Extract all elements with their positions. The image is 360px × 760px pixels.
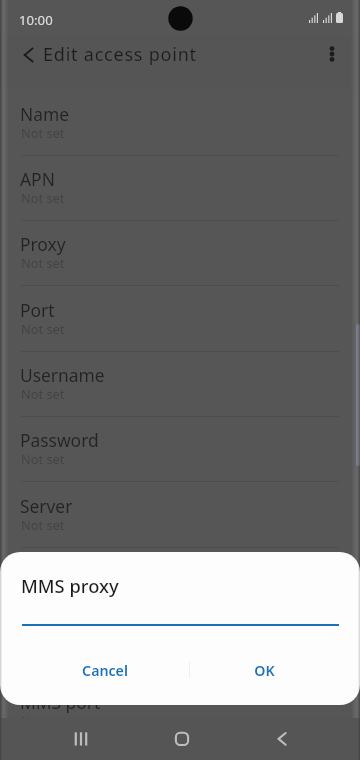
button[interactable]: Home: [160, 717, 204, 759]
staticText: Not set: [21, 516, 65, 533]
staticText: Not set: [21, 581, 65, 598]
staticText: Not set: [21, 254, 65, 271]
staticText: Not set: [21, 320, 65, 337]
button[interactable]: Proxy: [0, 221, 360, 286]
button[interactable]: Password: [0, 417, 360, 482]
button[interactable]: Recent apps: [59, 717, 103, 759]
staticText: Not set: [21, 385, 65, 402]
staticText: Cancel: [82, 661, 128, 680]
button[interactable]: Username: [0, 352, 360, 417]
staticText: Username: [20, 363, 105, 387]
button[interactable]: APN: [0, 156, 360, 221]
staticText: Not set: [21, 124, 65, 141]
staticText: 10:00: [19, 11, 53, 29]
button[interactable]: Server: [0, 483, 360, 548]
button[interactable]: Navigate up: [11, 35, 51, 75]
staticText: APN: [20, 167, 55, 191]
staticText: Edit access point: [43, 42, 197, 67]
button[interactable]: Name: [0, 91, 360, 156]
staticText: MMS proxy: [21, 573, 119, 598]
button[interactable]: Port: [0, 287, 360, 352]
staticText: MMS proxy: [20, 624, 112, 648]
staticText: Proxy: [20, 232, 66, 256]
button[interactable]: OK: [192, 653, 336, 687]
button[interactable]: MMS port: [0, 679, 360, 744]
staticText: Not set: [21, 189, 65, 206]
staticText: MMS port: [20, 690, 101, 714]
staticText: OK: [254, 661, 275, 680]
button[interactable]: Back: [260, 717, 304, 759]
button[interactable]: MMSC: [0, 548, 360, 613]
staticText: Not set: [21, 450, 65, 467]
staticText: Password: [20, 428, 99, 452]
button[interactable]: MMS proxy: [0, 613, 360, 678]
staticText: MMSC: [20, 559, 73, 583]
staticText: Server: [20, 494, 73, 518]
staticText: Port: [20, 298, 55, 322]
button[interactable]: More options: [312, 34, 352, 74]
button[interactable]: Cancel: [21, 653, 189, 687]
staticText: Name: [20, 102, 70, 126]
